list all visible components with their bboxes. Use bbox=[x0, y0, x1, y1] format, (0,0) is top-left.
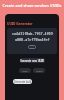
button[interactable]: Generate bulk bbox=[13, 79, 32, 84]
staticText: ca4d31f8ab-7f67-4f09 bbox=[12, 31, 53, 36]
button[interactable]: ca4d31f8ab-7f67-4f09 bbox=[7, 28, 57, 54]
button[interactable]: Share bbox=[33, 68, 45, 73]
staticText: UUID Generator bbox=[7, 22, 33, 26]
staticText: Generate new UUID bbox=[20, 59, 45, 63]
staticText: Generate bulk bbox=[14, 80, 32, 84]
staticText: Create and share random UUIDs bbox=[0, 3, 64, 8]
staticText: Copy bbox=[22, 69, 28, 72]
button[interactable]: Copy UUID bbox=[28, 45, 36, 49]
button[interactable]: Generate new UUID bbox=[20, 58, 45, 63]
staticText: Share bbox=[36, 69, 43, 72]
button[interactable]: Copy bbox=[19, 68, 31, 73]
staticText: a888-a7cf79be4fef bbox=[15, 37, 50, 42]
